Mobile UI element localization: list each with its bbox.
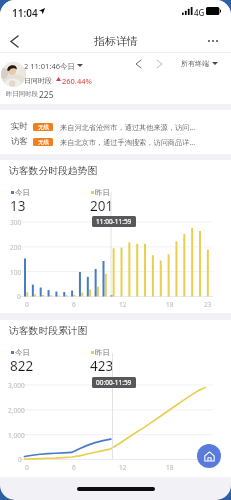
staticText: 无线 xyxy=(38,139,49,146)
staticText: 100 xyxy=(10,268,22,277)
staticText: 11:04 xyxy=(12,6,38,20)
staticText: 指标详情 xyxy=(94,34,138,48)
staticText: 12 xyxy=(119,463,127,472)
staticText: 6 xyxy=(72,463,76,472)
staticText: 来自北京市，通过手淘搜索，访问商品详... xyxy=(60,137,196,147)
staticText: 00:00-11:59 xyxy=(96,378,132,387)
staticText: 0 xyxy=(17,292,21,301)
staticText: 来自河北省沧州市，通过其他来源，访问... xyxy=(60,122,196,132)
staticText: 260.44% xyxy=(62,76,92,86)
button[interactable]: 访客 xyxy=(0,135,231,148)
staticText: 6 xyxy=(72,300,76,309)
staticText: 300 xyxy=(10,218,22,227)
staticText: 访客数时段累计图 xyxy=(9,325,88,337)
staticText: 23 xyxy=(204,300,212,309)
staticText: 访客 xyxy=(11,136,28,147)
staticText: 3,000 xyxy=(8,381,25,390)
button[interactable]: More options xyxy=(202,30,224,52)
staticText: 822 xyxy=(10,357,34,375)
staticText: 所有终端 xyxy=(181,59,209,68)
staticText: 无线 xyxy=(38,124,49,131)
staticText: 201 xyxy=(90,197,114,215)
staticText: 4G xyxy=(194,7,205,18)
staticText: 0 xyxy=(25,463,29,472)
staticText: 0 xyxy=(25,300,29,309)
button[interactable]: Back xyxy=(3,30,25,52)
staticText: 423 xyxy=(90,357,114,375)
button[interactable]: 实时 xyxy=(0,120,231,133)
staticText: 今日 xyxy=(15,348,30,357)
staticText: 昨日同时段 xyxy=(6,90,38,98)
staticText: 13 xyxy=(10,197,26,215)
button[interactable]: Home xyxy=(197,444,221,468)
button[interactable]: 所有终端 xyxy=(181,59,218,68)
staticText: 0 xyxy=(18,455,22,464)
staticText: 225 xyxy=(39,89,54,101)
staticText: 今日 xyxy=(15,188,30,197)
staticText: 实时 xyxy=(11,121,28,132)
staticText: 18 xyxy=(166,463,174,472)
staticText: 日同时段 xyxy=(24,76,52,85)
staticText: 200 xyxy=(10,243,22,252)
staticText: 昨日 xyxy=(95,188,110,197)
staticText: 12 xyxy=(119,300,127,309)
staticText: 1,000 xyxy=(8,431,25,440)
staticText: 访客数分时段趋势图 xyxy=(9,165,98,177)
staticText: 2,000 xyxy=(8,406,25,415)
staticText: 18 xyxy=(166,300,174,309)
staticText: 2 11:01:46今日 xyxy=(24,61,75,71)
staticText: 昨日 xyxy=(95,348,110,357)
button[interactable]: Previous xyxy=(130,56,146,72)
staticText: 11:00-11:59 xyxy=(96,217,132,226)
button[interactable]: Next xyxy=(151,56,167,72)
